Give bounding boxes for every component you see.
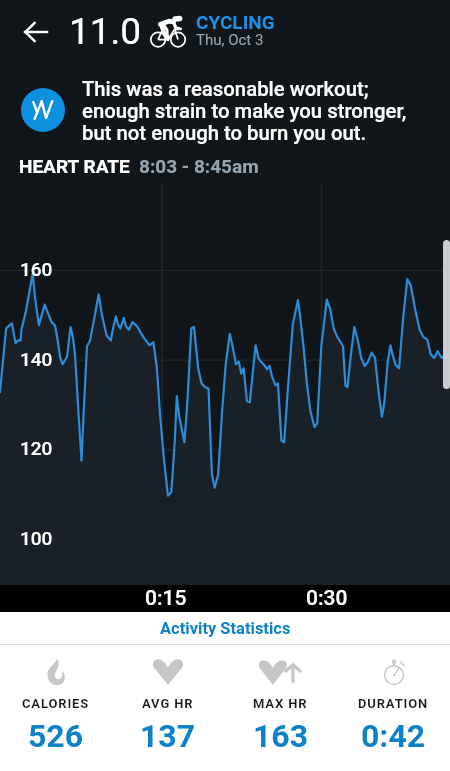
staticText: 0:42 — [361, 717, 426, 755]
staticText: This was a reasonable workout; enough st… — [82, 77, 422, 145]
staticText: 160 — [20, 258, 53, 280]
staticText: 163 — [253, 717, 309, 755]
staticText: 526 — [28, 717, 84, 755]
staticText: 140 — [20, 348, 53, 370]
button[interactable]: Activity Statistics — [0, 612, 450, 644]
staticText: 137 — [140, 717, 196, 755]
button[interactable]: MAX HR — [224, 659, 337, 755]
staticText: 0:30 — [306, 586, 348, 611]
button[interactable]: DURATION — [337, 659, 450, 755]
staticText: HEART RATE — [19, 155, 130, 177]
staticText: DURATION — [358, 696, 429, 711]
staticText: 100 — [20, 527, 53, 549]
staticText: AVG HR — [142, 696, 194, 711]
staticText: Activity Statistics — [160, 619, 291, 638]
staticText: 11.0 — [69, 10, 142, 53]
staticText: MAX HR — [253, 696, 308, 711]
button[interactable]: Back — [10, 6, 62, 58]
staticText: 120 — [20, 437, 53, 459]
staticText: 8:03 - 8:45am — [139, 155, 259, 177]
button[interactable]: CALORIES — [0, 659, 112, 755]
button[interactable]: AVG HR — [112, 659, 224, 755]
staticText: 0:15 — [145, 586, 187, 611]
staticText: CALORIES — [22, 696, 90, 711]
staticText: Thu, Oct 3 — [196, 31, 264, 49]
staticText: CYCLING — [196, 11, 275, 33]
